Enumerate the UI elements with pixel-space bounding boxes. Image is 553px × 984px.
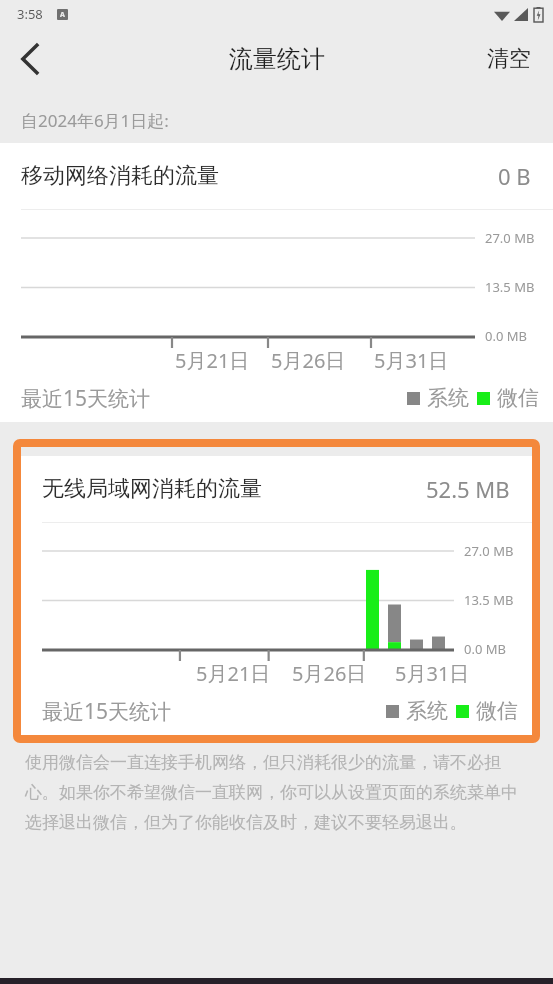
staticText: 5月26日 <box>292 660 367 687</box>
staticText: 自2024年6月1日起: <box>21 109 169 132</box>
staticText: 清空 <box>487 45 531 73</box>
staticText: 27.0 MB <box>485 229 535 247</box>
staticText: 52.5 MB <box>426 474 510 504</box>
staticText: 5月31日 <box>395 660 470 687</box>
staticText: 5月21日 <box>196 660 271 687</box>
staticText: 使用微信会一直连接手机网络，但只消耗很少的流量，请不必担心。如果你不希望微信一直… <box>25 752 528 833</box>
staticText: 微信 <box>476 698 518 724</box>
staticText: 流量统计 <box>229 44 325 74</box>
button[interactable]: 返回 <box>0 28 60 90</box>
staticText: 0.0 MB <box>485 327 527 345</box>
staticText: 13.5 MB <box>485 278 535 296</box>
staticText: 13.5 MB <box>464 591 514 609</box>
button[interactable]: 移动网络消耗的流量 <box>0 143 553 422</box>
staticText: 27.0 MB <box>464 542 514 560</box>
staticText: 系统 <box>406 698 448 724</box>
button[interactable]: 无线局域网消耗的流量 <box>21 456 532 735</box>
staticText: 5月21日 <box>175 347 250 374</box>
staticText: 5月31日 <box>374 347 449 374</box>
staticText: 3:58 <box>17 5 43 23</box>
button[interactable]: 清空 <box>465 28 553 90</box>
staticText: A <box>60 10 65 20</box>
staticText: 无线局域网消耗的流量 <box>42 475 262 503</box>
staticText: 最近15天统计 <box>42 697 172 726</box>
staticText: 系统 <box>427 385 469 411</box>
staticText: 微信 <box>497 385 539 411</box>
staticText: 5月26日 <box>271 347 346 374</box>
staticText: 移动网络消耗的流量 <box>21 162 219 190</box>
staticText: 0 B <box>498 161 531 191</box>
staticText: 最近15天统计 <box>21 384 151 413</box>
staticText: 0.0 MB <box>464 640 506 658</box>
